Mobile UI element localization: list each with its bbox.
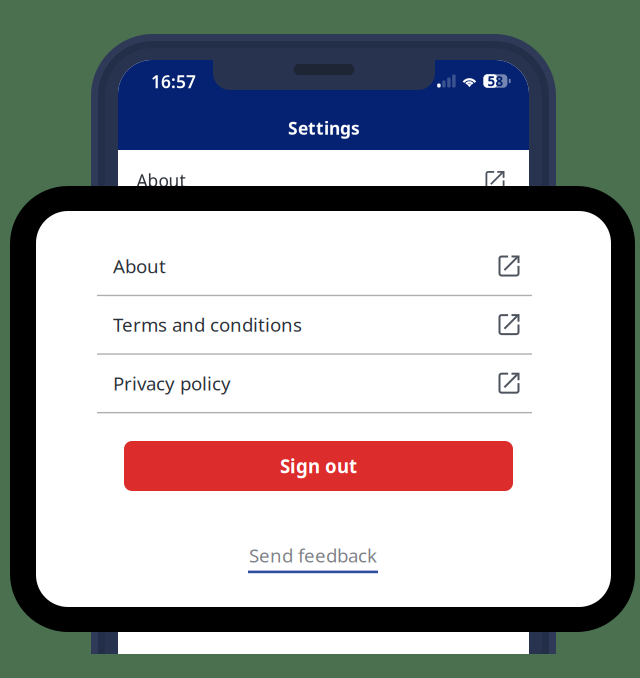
staticText: About bbox=[113, 254, 166, 278]
button[interactable]: About bbox=[97, 237, 532, 296]
button[interactable]: Privacy policy bbox=[97, 355, 532, 413]
staticText: Settings bbox=[288, 116, 360, 139]
staticText: Privacy policy bbox=[113, 371, 231, 396]
staticText: Terms and conditions bbox=[113, 312, 302, 337]
staticText: 16:57 bbox=[151, 70, 196, 93]
button[interactable]: Terms and conditions bbox=[97, 296, 532, 355]
staticText: 58 bbox=[487, 72, 503, 90]
button[interactable]: Sign out bbox=[124, 441, 513, 491]
staticText: About bbox=[136, 169, 185, 192]
button[interactable]: Send feedback bbox=[213, 541, 413, 575]
staticText: Sign out bbox=[280, 454, 357, 478]
staticText: Send feedback bbox=[249, 543, 377, 568]
